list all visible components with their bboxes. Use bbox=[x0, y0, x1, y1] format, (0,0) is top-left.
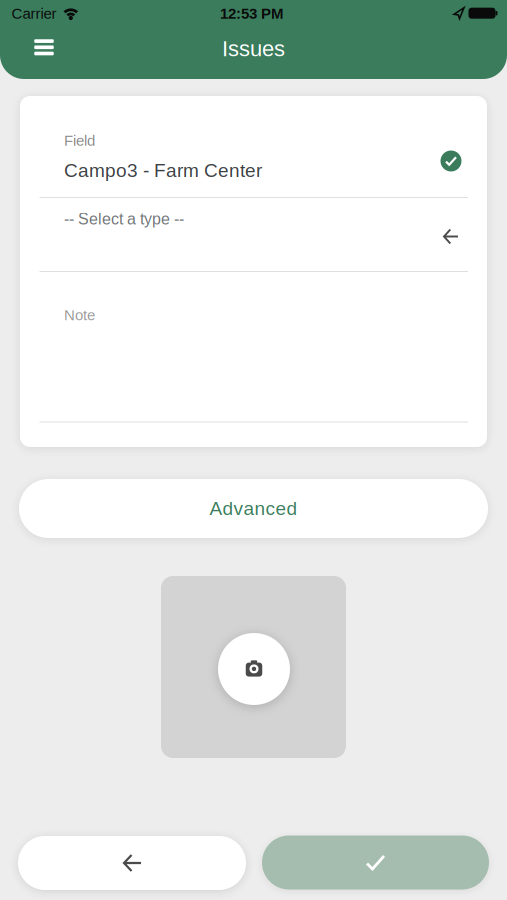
button[interactable]: Note bbox=[20, 272, 487, 447]
staticText: Field bbox=[64, 132, 95, 149]
staticText: 12:53 PM bbox=[220, 5, 283, 22]
button[interactable] bbox=[22, 29, 66, 65]
button[interactable] bbox=[18, 836, 246, 890]
staticText: Note bbox=[64, 307, 95, 323]
staticText: Issues bbox=[222, 36, 285, 61]
button[interactable]: Field bbox=[20, 96, 487, 198]
button[interactable]: -- Select a type -- bbox=[20, 198, 487, 272]
button[interactable]: Advanced bbox=[19, 479, 488, 538]
staticText: Carrier bbox=[11, 5, 56, 22]
button[interactable] bbox=[161, 576, 346, 758]
staticText: -- Select a type -- bbox=[64, 210, 184, 228]
button[interactable] bbox=[262, 835, 489, 889]
staticText: Campo3 - Farm Center bbox=[64, 160, 262, 181]
staticText: Advanced bbox=[209, 498, 297, 519]
